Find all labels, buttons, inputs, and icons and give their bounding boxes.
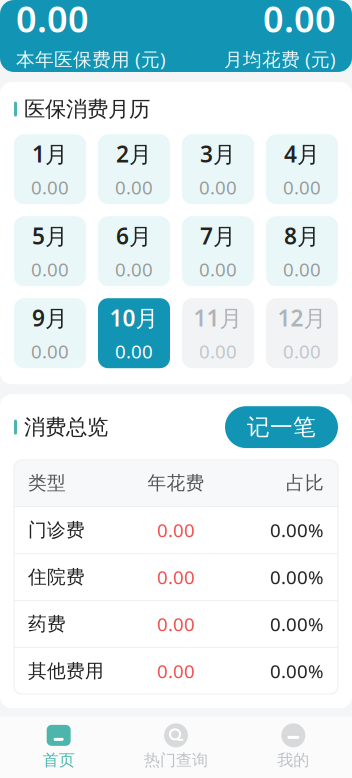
staticText: 首页 xyxy=(43,750,75,770)
staticText: 0.00 xyxy=(115,339,153,364)
staticText: 0.00 xyxy=(115,257,153,282)
staticText: 0.00 xyxy=(199,257,237,282)
staticText: 0.00 xyxy=(157,565,195,589)
staticText: 0.00 xyxy=(16,0,89,42)
staticText: 药费 xyxy=(28,613,66,635)
staticText: 0.00% xyxy=(270,612,324,636)
button[interactable]: 3月 xyxy=(182,134,254,204)
staticText: 11月 xyxy=(193,303,242,333)
staticText: 5月 xyxy=(32,221,68,251)
staticText: 住院费 xyxy=(28,566,85,588)
button[interactable]: 热门查询 xyxy=(117,723,235,770)
staticText: 0.00 xyxy=(283,339,321,364)
button[interactable]: 11月 xyxy=(182,298,254,368)
button[interactable]: 10月 xyxy=(98,298,170,368)
staticText: 8月 xyxy=(284,221,320,251)
staticText: 10月 xyxy=(109,303,158,333)
staticText: 占比 xyxy=(286,472,324,494)
staticText: 0.00 xyxy=(157,659,195,683)
staticText: 0.00 xyxy=(157,612,195,636)
button[interactable]: 6月 xyxy=(98,216,170,286)
staticText: 0.00% xyxy=(270,518,324,542)
staticText: 7月 xyxy=(200,221,236,251)
staticText: 医保消费月历 xyxy=(24,96,150,122)
staticText: 月均花费 (元) xyxy=(224,46,336,71)
staticText: 门诊费 xyxy=(28,519,85,541)
staticText: 0.00 xyxy=(283,257,321,282)
staticText: 2月 xyxy=(116,139,152,169)
staticText: 0.00% xyxy=(270,659,324,683)
staticText: 3月 xyxy=(200,139,236,169)
staticText: 0.00 xyxy=(31,175,69,200)
button[interactable]: 2月 xyxy=(98,134,170,204)
staticText: 热门查询 xyxy=(144,750,208,770)
staticText: 我的 xyxy=(277,750,309,770)
staticText: 0.00 xyxy=(199,339,237,364)
staticText: 0.00 xyxy=(157,518,195,542)
staticText: 4月 xyxy=(284,139,320,169)
button[interactable]: 记一笔 xyxy=(225,406,338,448)
button[interactable]: 9月 xyxy=(14,298,86,368)
staticText: 年花费 xyxy=(147,472,204,494)
staticText: 12月 xyxy=(277,303,326,333)
button[interactable]: 我的 xyxy=(235,723,352,770)
staticText: 9月 xyxy=(32,303,68,333)
staticText: 0.00 xyxy=(31,257,69,282)
button[interactable]: 12月 xyxy=(266,298,338,368)
staticText: 1月 xyxy=(32,139,68,169)
staticText: 0.00 xyxy=(283,175,321,200)
staticText: 0.00 xyxy=(115,175,153,200)
staticText: 其他费用 xyxy=(28,660,104,682)
button[interactable]: 5月 xyxy=(14,216,86,286)
button[interactable]: 8月 xyxy=(266,216,338,286)
staticText: 类型 xyxy=(28,472,66,494)
staticText: 0.00 xyxy=(263,0,336,42)
button[interactable]: 首页 xyxy=(0,723,117,770)
staticText: 6月 xyxy=(116,221,152,251)
button[interactable]: 4月 xyxy=(266,134,338,204)
staticText: 0.00 xyxy=(199,175,237,200)
button[interactable]: 1月 xyxy=(14,134,86,204)
staticText: 消费总览 xyxy=(24,414,108,440)
button[interactable]: 7月 xyxy=(182,216,254,286)
staticText: 0.00 xyxy=(31,339,69,364)
staticText: 0.00% xyxy=(270,565,324,589)
staticText: 记一笔 xyxy=(247,413,316,441)
staticText: 本年医保费用 (元) xyxy=(16,46,166,71)
